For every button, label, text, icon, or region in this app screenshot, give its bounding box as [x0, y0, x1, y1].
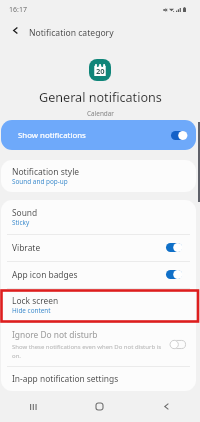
button[interactable]: Toggle — [171, 131, 187, 140]
staticText: Vibrate — [12, 242, 41, 253]
staticText: 20 — [96, 66, 105, 76]
staticText: Show these notifications even when Do no… — [12, 343, 162, 359]
staticText: In-app notification settings — [12, 373, 119, 384]
staticText: Sticky — [12, 218, 30, 227]
staticText: 16:17 — [9, 5, 27, 15]
button[interactable]: Vibrate — [1, 234, 196, 261]
staticText: Sound — [12, 207, 38, 218]
staticText: Hide content — [12, 306, 51, 315]
staticText: Ignore Do not disturb — [12, 329, 98, 340]
staticText: General notifications — [39, 89, 162, 106]
staticText: Notification style — [12, 166, 80, 178]
button[interactable]: Toggle — [166, 270, 182, 279]
button[interactable]: Ignore Do not disturb — [1, 322, 196, 366]
button[interactable]: App icon badges — [1, 261, 196, 288]
button[interactable]: Lock screen — [1, 288, 196, 322]
button[interactable]: Toggle — [170, 340, 186, 349]
staticText: Show notifications — [18, 130, 86, 141]
button[interactable]: Back — [133, 391, 200, 422]
button[interactable]: Back — [4, 19, 26, 41]
staticText: Calendar — [87, 109, 114, 118]
button[interactable]: Toggle — [166, 243, 182, 252]
button[interactable]: Notification style — [1, 160, 196, 192]
button[interactable]: Sound — [1, 200, 196, 234]
staticText: App icon badges — [12, 269, 78, 280]
button[interactable]: In-app notification settings — [1, 366, 196, 391]
button[interactable]: Home — [66, 391, 133, 422]
button[interactable]: Show notifications — [1, 120, 196, 150]
staticText: Sound and pop-up — [12, 177, 68, 186]
button[interactable]: Recents — [0, 391, 66, 422]
staticText: Notification category — [29, 27, 114, 39]
staticText: Lock screen — [12, 295, 59, 306]
